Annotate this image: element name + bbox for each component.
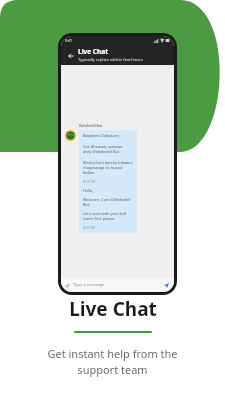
staticText: fadlan: [83, 170, 95, 175]
button[interactable]: Back: [65, 50, 76, 61]
staticText: Welcome, I am Dahabshiil: [83, 197, 131, 202]
button[interactable]: Type a message: [61, 278, 174, 292]
staticText: Let's start with your full: [83, 211, 126, 216]
staticText: 9:41: [65, 38, 72, 43]
staticText: Marka hore aan ku bilowno: [83, 160, 133, 165]
staticText: 09:07 PM: [83, 226, 96, 230]
staticText: Assalamu Calaikum,: [83, 133, 120, 138]
staticText: Live Chat: [69, 296, 157, 322]
staticText: Typically replies within few hours: [78, 57, 143, 63]
staticText: name first please: [83, 216, 115, 221]
staticText: Dahabshiil Bot: [79, 124, 103, 128]
button[interactable]: Send: [162, 281, 170, 289]
staticText: ahay Dahabshiil Bot.: [83, 149, 121, 154]
staticText: 09:07 PM: [83, 180, 96, 184]
staticText: Get instant help from the support team: [47, 346, 178, 378]
staticText: Live Chat: [78, 47, 108, 56]
staticText: Soo dhowow, waxaan: [83, 144, 123, 149]
staticText: Hello,: [83, 188, 94, 193]
staticText: Type a message: [73, 282, 105, 288]
staticText: magacaaga oo buuxa: [83, 165, 123, 170]
staticText: Bot.: [83, 202, 91, 207]
